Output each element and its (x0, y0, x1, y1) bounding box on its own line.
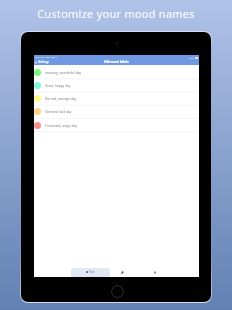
staticText: 98% (189, 56, 194, 59)
button[interactable]: More apps (153, 271, 157, 275)
staticText: Mon (89, 270, 95, 274)
staticText: amazing, wonderful day (45, 71, 82, 75)
staticText: Settings (38, 60, 49, 64)
staticText: Customize your mood names (0, 6, 232, 21)
button[interactable]: Frustrated, angry day (34, 119, 199, 132)
staticText: Edit mood labels (104, 60, 129, 64)
button[interactable]: Great, happy day (34, 79, 199, 92)
button[interactable]: Share (120, 271, 124, 275)
staticText: Stressed, bad day (45, 110, 72, 114)
staticText: 9:41 AM Wed Sep 9 (35, 55, 58, 58)
button[interactable]: Normal, average day (34, 92, 199, 105)
button[interactable]: Settings (34, 60, 49, 64)
button[interactable]: Stressed, bad day (34, 105, 199, 118)
staticText: Frustrated, angry day (45, 124, 78, 128)
button[interactable]: amazing, wonderful day (34, 66, 199, 79)
staticText: Great, happy day (45, 84, 71, 88)
button[interactable]: Mon (71, 268, 110, 277)
staticText: Normal, average day (45, 97, 77, 101)
